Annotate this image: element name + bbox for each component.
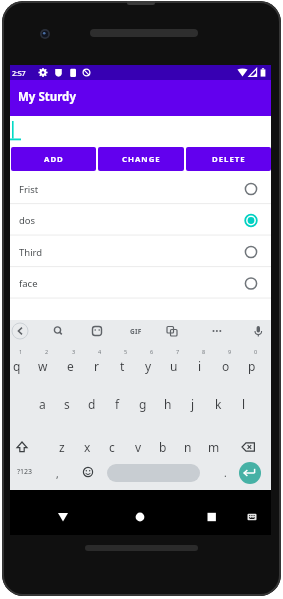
button[interactable] bbox=[10, 235, 271, 266]
button[interactable]: m bbox=[202, 433, 226, 461]
button[interactable]: t bbox=[110, 352, 134, 380]
button[interactable] bbox=[10, 116, 271, 147]
staticText: c bbox=[109, 439, 115, 455]
button[interactable]: CHANGE bbox=[98, 147, 184, 171]
button[interactable]: h bbox=[156, 390, 180, 418]
button[interactable] bbox=[196, 503, 226, 531]
button[interactable]: e bbox=[58, 352, 82, 380]
staticText: a bbox=[39, 396, 46, 412]
staticText: u bbox=[170, 358, 178, 374]
staticText: 2 bbox=[45, 348, 49, 355]
staticText: 8 bbox=[202, 348, 206, 355]
button[interactable]: r bbox=[84, 352, 108, 380]
staticText: x bbox=[84, 439, 91, 455]
button[interactable]: l bbox=[232, 390, 256, 418]
staticText: 2:57 bbox=[12, 68, 26, 78]
staticText: z bbox=[59, 439, 65, 455]
staticText: l bbox=[242, 396, 246, 412]
staticText: ADD bbox=[44, 154, 64, 165]
button[interactable] bbox=[48, 503, 78, 531]
button[interactable]: c bbox=[100, 433, 124, 461]
button[interactable]: k bbox=[206, 390, 230, 418]
staticText: i bbox=[198, 358, 202, 374]
button[interactable]: i bbox=[188, 352, 212, 380]
button[interactable] bbox=[10, 203, 271, 234]
staticText: y bbox=[145, 358, 152, 374]
button[interactable]: ADD bbox=[11, 147, 96, 171]
staticText: 7 bbox=[176, 348, 180, 355]
staticText: f bbox=[115, 396, 120, 412]
staticText: Frist bbox=[19, 183, 39, 196]
staticText: 9 bbox=[228, 348, 232, 355]
staticText: h bbox=[164, 396, 172, 412]
staticText: 5 bbox=[124, 348, 128, 355]
staticText: o bbox=[222, 358, 230, 374]
staticText: k bbox=[215, 396, 222, 412]
button[interactable] bbox=[10, 436, 36, 458]
button[interactable]: b bbox=[151, 433, 175, 461]
staticText: 0 bbox=[254, 348, 258, 355]
button[interactable]: v bbox=[126, 433, 150, 461]
button[interactable]: j bbox=[181, 390, 205, 418]
button[interactable] bbox=[239, 462, 261, 484]
staticText: s bbox=[64, 396, 70, 412]
button[interactable]: u bbox=[162, 352, 186, 380]
staticText: w bbox=[38, 358, 48, 374]
staticText: p bbox=[248, 358, 256, 374]
staticText: n bbox=[184, 439, 192, 455]
staticText: 4 bbox=[98, 348, 102, 355]
staticText: dos bbox=[19, 214, 36, 227]
staticText: v bbox=[135, 439, 142, 455]
staticText: 6 bbox=[150, 348, 154, 355]
button[interactable]: q bbox=[5, 352, 29, 380]
button[interactable] bbox=[125, 503, 155, 531]
staticText: , bbox=[56, 467, 59, 481]
staticText: 1 bbox=[19, 348, 23, 355]
staticText: ?123 bbox=[17, 467, 33, 477]
staticText: face bbox=[19, 277, 38, 290]
staticText: t bbox=[120, 358, 125, 374]
button[interactable]: g bbox=[131, 390, 155, 418]
staticText: d bbox=[88, 396, 96, 412]
button[interactable]: w bbox=[31, 352, 55, 380]
staticText: m bbox=[208, 439, 220, 455]
button[interactable] bbox=[107, 464, 200, 482]
button[interactable]: n bbox=[176, 433, 200, 461]
staticText: GIF bbox=[130, 327, 142, 336]
staticText: j bbox=[191, 396, 195, 412]
button[interactable] bbox=[10, 266, 271, 297]
button[interactable] bbox=[10, 172, 271, 203]
staticText: My Sturdy bbox=[18, 89, 76, 105]
button[interactable]: d bbox=[80, 390, 104, 418]
button[interactable]: y bbox=[136, 352, 160, 380]
button[interactable]: o bbox=[214, 352, 238, 380]
staticText: b bbox=[159, 439, 167, 455]
button[interactable]: x bbox=[75, 433, 99, 461]
staticText: . bbox=[224, 466, 227, 480]
button[interactable]: a bbox=[30, 390, 54, 418]
button[interactable] bbox=[237, 436, 263, 458]
staticText: DELETE bbox=[212, 154, 246, 165]
staticText: q bbox=[13, 358, 21, 374]
staticText: g bbox=[139, 396, 147, 412]
button[interactable]: z bbox=[50, 433, 74, 461]
staticText: e bbox=[67, 358, 74, 374]
staticText: Third bbox=[19, 246, 43, 259]
staticText: CHANGE bbox=[122, 154, 161, 165]
button[interactable]: s bbox=[55, 390, 79, 418]
staticText: r bbox=[94, 358, 99, 374]
button[interactable] bbox=[14, 461, 38, 483]
button[interactable]: p bbox=[240, 352, 264, 380]
button[interactable]: DELETE bbox=[186, 147, 271, 171]
staticText: 3 bbox=[72, 348, 76, 355]
button[interactable]: f bbox=[105, 390, 129, 418]
